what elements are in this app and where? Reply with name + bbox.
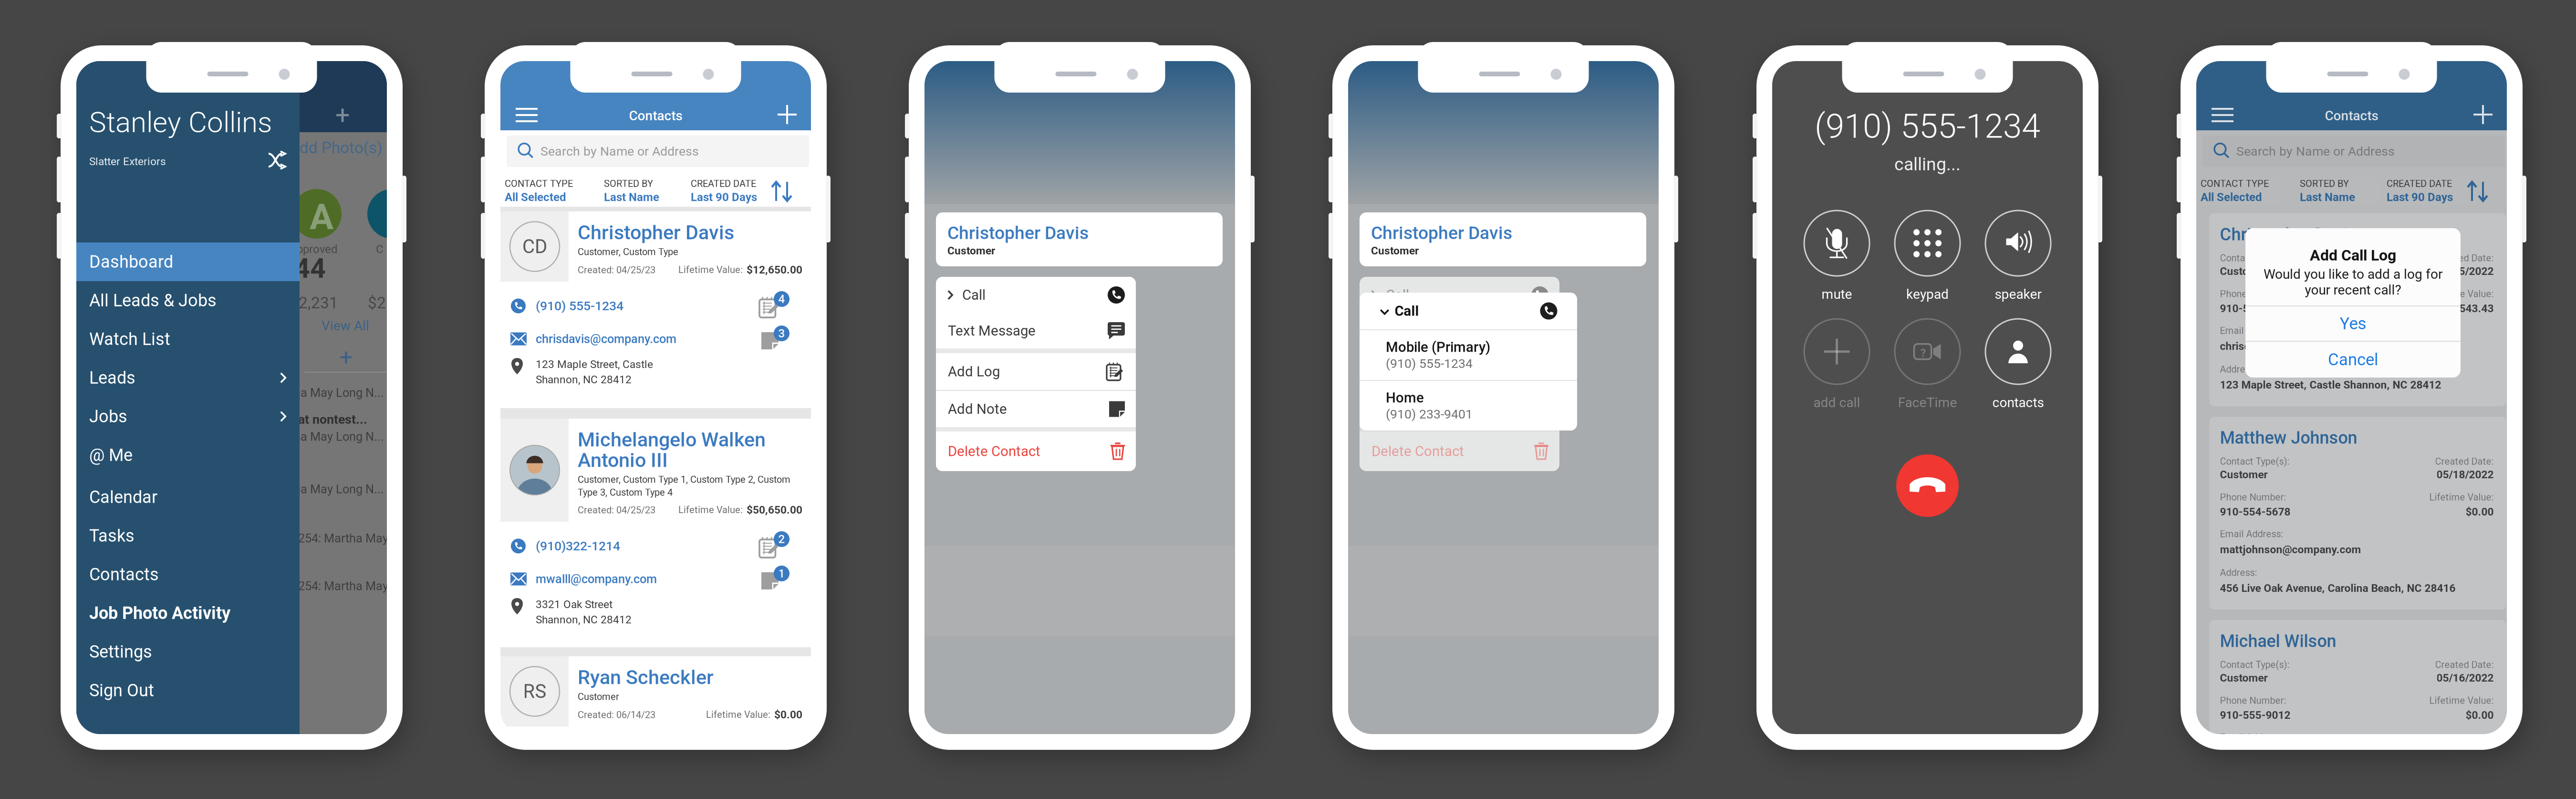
- button[interactable]: CONTACT TYPE: [2201, 178, 2282, 205]
- staticText: $0.00: [2466, 505, 2494, 518]
- button[interactable]: Add contact: [2467, 98, 2499, 131]
- staticText: Email Address:: [2220, 732, 2283, 743]
- staticText: Jobs: [89, 406, 127, 427]
- staticText: your recent call?: [2305, 282, 2401, 298]
- staticText: (910)322-1214: [536, 539, 620, 554]
- button[interactable]: Text Message: [1360, 313, 1559, 348]
- button[interactable]: Jobs: [76, 397, 300, 436]
- button[interactable]: add call: [1792, 312, 1882, 407]
- button[interactable]: (910)322-1214: [500, 531, 725, 561]
- staticText: 1: [778, 567, 785, 580]
- button[interactable]: Menu: [508, 100, 545, 130]
- staticText: ha May Long N...: [294, 482, 384, 496]
- button[interactable]: Add Log: [1360, 353, 1559, 390]
- button[interactable]: FaceTime: [1882, 312, 1973, 407]
- button[interactable]: Add Log: [936, 353, 1136, 390]
- staticText: Contacts: [89, 564, 159, 585]
- button[interactable]: Call logs: [759, 531, 791, 561]
- button[interactable]: SORTED BY: [2300, 178, 2381, 205]
- button[interactable]: Switch company: [264, 148, 291, 172]
- staticText: Last Name: [2300, 190, 2355, 204]
- staticText: 910-555-9012: [2220, 709, 2290, 721]
- staticText: Customer: [578, 691, 619, 702]
- staticText: Text Message: [948, 323, 1036, 339]
- button[interactable]: Leads: [76, 358, 300, 397]
- button[interactable]: Notes: [759, 326, 791, 354]
- button[interactable]: SORTED BY: [604, 178, 685, 205]
- button[interactable]: Call: [1360, 277, 1559, 313]
- button[interactable]: Call: [1368, 293, 1568, 329]
- button[interactable]: CONTACT TYPE: [505, 178, 586, 205]
- button[interactable]: keypad: [1882, 203, 1973, 299]
- button[interactable]: Mobile (Primary): [1360, 330, 1577, 380]
- staticText: Created: 04/25/23: [578, 264, 655, 276]
- button[interactable]: Home: [1360, 381, 1577, 431]
- button[interactable]: mwalll@company.com: [500, 566, 725, 592]
- button[interactable]: Add Note: [1360, 391, 1559, 427]
- button[interactable]: Call logs: [759, 291, 791, 321]
- staticText: 05/18/2022: [2436, 468, 2494, 481]
- button[interactable]: chrisdavis@company.com: [500, 326, 725, 352]
- button[interactable]: Menu: [2204, 100, 2241, 130]
- button[interactable]: (910) 555-1234: [500, 291, 725, 321]
- staticText: Add Note: [948, 401, 1007, 417]
- staticText: Contact Type(s):: [2220, 456, 2290, 467]
- staticText: 910-555-1234: [2220, 302, 2290, 315]
- button[interactable]: Search by Name or Address: [507, 136, 809, 167]
- button[interactable]: End call: [1896, 454, 1959, 517]
- button[interactable]: Contacts: [76, 555, 300, 594]
- button[interactable]: Delete Contact: [936, 431, 1136, 471]
- button[interactable]: Notes: [759, 566, 791, 594]
- staticText: Type 3, Custom Type 4: [578, 487, 673, 498]
- staticText: 2: [778, 532, 785, 546]
- staticText: 05/16/2022: [2436, 672, 2494, 684]
- button[interactable]: Sort order: [769, 178, 798, 205]
- staticText: keypad: [1906, 286, 1949, 302]
- staticText: 123 Maple Street, Castle: [536, 358, 653, 371]
- staticText: CREATED DATE: [2387, 178, 2452, 189]
- staticText: View All: [322, 318, 369, 334]
- staticText: RS: [523, 680, 546, 703]
- button[interactable]: Delete Contact: [1360, 431, 1559, 471]
- button[interactable]: Tasks: [76, 516, 300, 555]
- button[interactable]: Dashboard: [76, 242, 300, 281]
- staticText: chrisdavis@company.com: [2220, 340, 2349, 353]
- button[interactable]: Calendar: [76, 478, 300, 516]
- button[interactable]: Yes: [2245, 306, 2461, 341]
- staticText: Search by Name or Address: [540, 144, 699, 159]
- button[interactable]: mute: [1792, 203, 1882, 299]
- button[interactable]: Sort order: [2465, 178, 2493, 205]
- staticText: Add Log: [948, 363, 1000, 380]
- button[interactable]: @ Me: [76, 436, 300, 474]
- staticText: $50,650.00: [747, 504, 802, 516]
- staticText: ha May Long N...: [294, 386, 384, 400]
- staticText: Created Date:: [2435, 659, 2494, 670]
- staticText: Delete Contact: [948, 443, 1040, 459]
- button[interactable]: All Leads & Jobs: [76, 281, 300, 320]
- staticText: 4: [778, 292, 785, 306]
- button[interactable]: CREATED DATE: [2387, 178, 2468, 205]
- button[interactable]: Settings: [76, 632, 300, 671]
- button[interactable]: Sign Out: [76, 671, 300, 710]
- staticText: Lifetime Value:: [706, 709, 770, 720]
- staticText: Delete Contact: [1371, 443, 1464, 459]
- staticText: contacts: [1992, 395, 2044, 410]
- button[interactable]: Text Message: [936, 313, 1136, 348]
- button[interactable]: speaker: [1973, 203, 2063, 299]
- button[interactable]: Search by Name or Address: [2202, 136, 2505, 167]
- button[interactable]: Job Photo Activity: [76, 594, 300, 632]
- button[interactable]: Cancel: [2245, 342, 2461, 378]
- staticText: CONTACT TYPE: [2201, 178, 2269, 189]
- staticText: 123 Maple Street, Castle Shannon, NC 284…: [2220, 378, 2441, 391]
- staticText: All Selected: [505, 190, 566, 204]
- staticText: Shannon, NC 28412: [536, 373, 632, 386]
- staticText: CREATED DATE: [691, 178, 756, 189]
- staticText: Lifetime Value:: [678, 264, 743, 275]
- button[interactable]: Add contact: [771, 98, 803, 131]
- button[interactable]: Call: [936, 277, 1136, 313]
- staticText: Call: [962, 287, 986, 303]
- button[interactable]: CREATED DATE: [691, 178, 772, 205]
- button[interactable]: Watch List: [76, 320, 300, 358]
- button[interactable]: Add Note: [936, 391, 1136, 427]
- button[interactable]: contacts: [1973, 312, 2063, 407]
